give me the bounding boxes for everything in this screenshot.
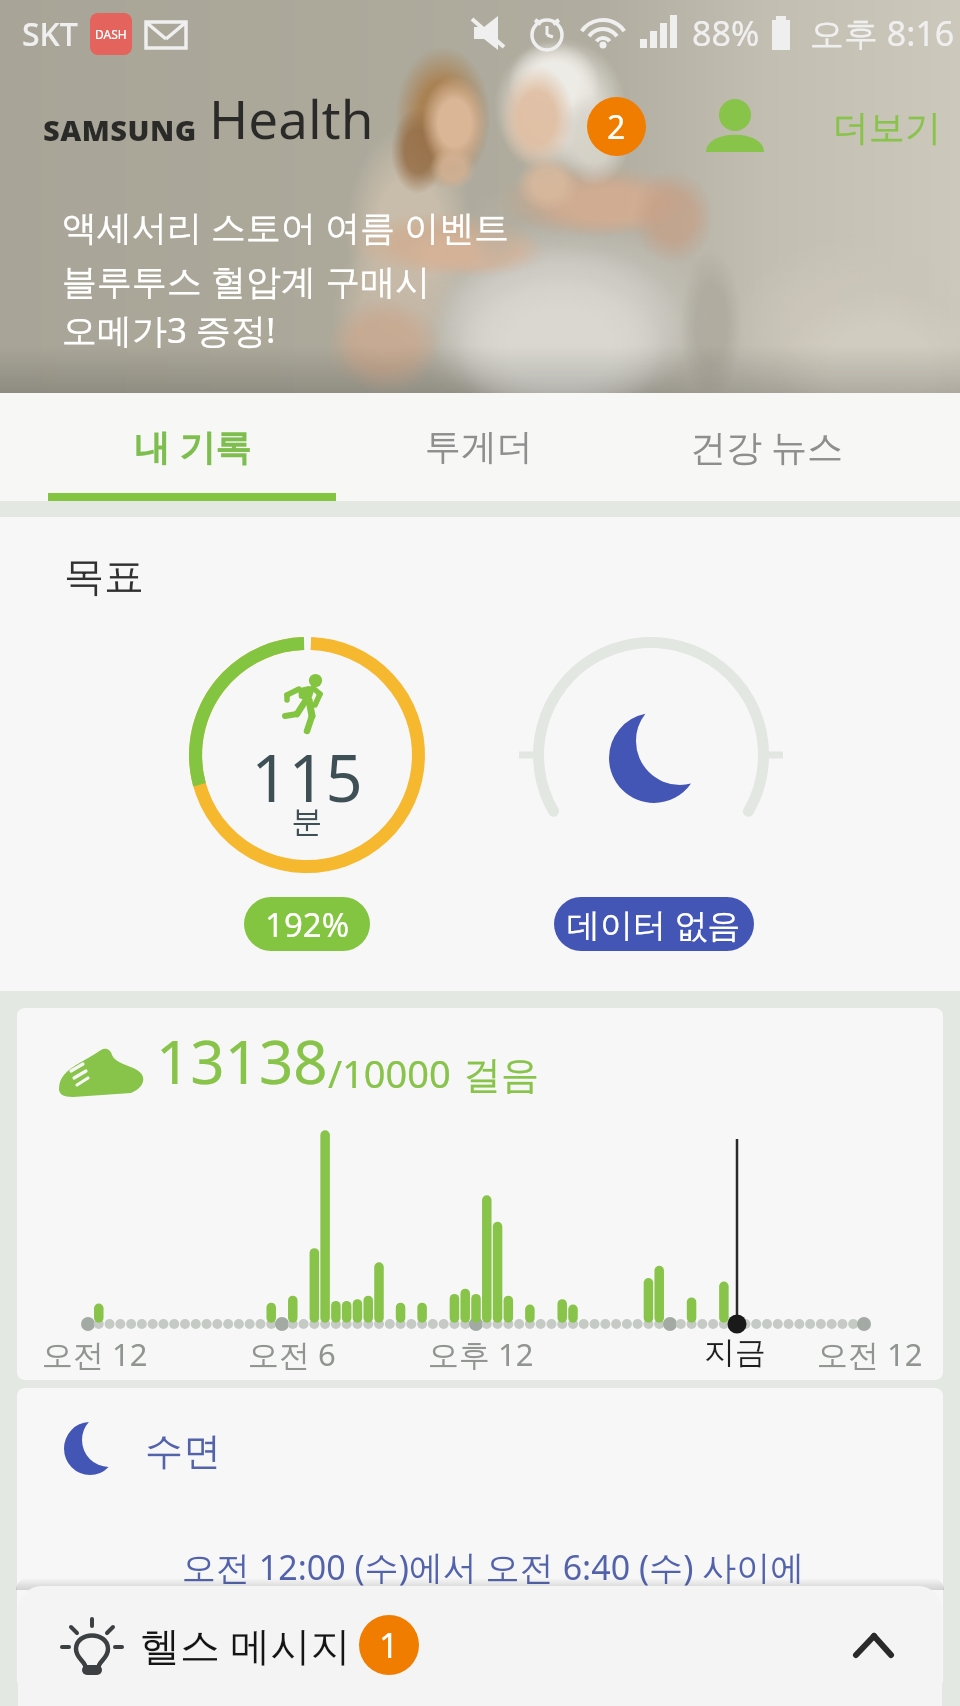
button[interactable]: Notifications, 2 new xyxy=(587,97,646,156)
staticText: 1 xyxy=(379,1622,399,1668)
staticText: 192% xyxy=(265,902,350,947)
staticText: 88% xyxy=(692,10,760,56)
staticText: 목표 xyxy=(64,551,144,601)
staticText: 오전 12 xyxy=(817,1333,923,1375)
staticText: /10000 xyxy=(328,1047,451,1099)
button[interactable]: 192% xyxy=(244,897,370,951)
staticText: 지금 xyxy=(704,1333,766,1372)
staticText: SKT xyxy=(22,12,78,56)
staticText: 115 xyxy=(189,733,425,822)
staticText: 데이터 없음 xyxy=(567,902,741,947)
staticText: 오전 12:00 (수)에서 오전 6:40 (수) 사이에 xyxy=(182,1544,805,1590)
staticText: 2 xyxy=(607,105,626,149)
staticText: 오전 12 xyxy=(42,1333,148,1375)
staticText: 액세서리 스토어 여름 이벤트 xyxy=(62,203,510,251)
staticText: DASH xyxy=(95,26,127,42)
staticText: 수면 xyxy=(145,1427,221,1475)
staticText: 오전 6 xyxy=(248,1333,336,1375)
staticText: 걸음 xyxy=(463,1051,539,1099)
staticText: 13138 xyxy=(156,1020,328,1102)
staticText: 분 xyxy=(189,802,425,841)
staticText: 건강 뉴스 xyxy=(690,422,844,471)
staticText: 내 기록 xyxy=(134,422,252,471)
staticText: 오후 8:16 xyxy=(810,10,955,56)
staticText: 오메가3 증정! xyxy=(62,306,276,354)
staticText: 더보기 xyxy=(833,105,941,150)
button[interactable]: 데이터 없음 xyxy=(554,897,754,951)
button[interactable]: 투게더 xyxy=(335,393,623,501)
staticText: Health xyxy=(209,82,374,154)
button[interactable]: 13138 xyxy=(17,1008,943,1380)
staticText: 블루투스 혈압계 구매시 xyxy=(62,257,431,305)
button[interactable]: Collapse health messages xyxy=(824,1610,904,1690)
staticText: SAMSUNG xyxy=(43,110,197,149)
button[interactable]: 목표 xyxy=(0,517,960,991)
staticText: 오후 12 xyxy=(428,1333,534,1375)
button[interactable]: 더보기 xyxy=(833,105,941,150)
button[interactable]: 수면 xyxy=(17,1388,943,1688)
button[interactable]: SKT xyxy=(0,0,960,393)
staticText: 투게더 xyxy=(425,424,533,469)
button[interactable]: 내 기록 xyxy=(49,393,337,501)
button[interactable]: 건강 뉴스 xyxy=(623,393,911,501)
button[interactable]: Profile xyxy=(702,96,768,162)
staticText: 헬스 메시지 xyxy=(140,1617,351,1672)
button[interactable]: 헬스 메시지 xyxy=(18,1586,942,1706)
